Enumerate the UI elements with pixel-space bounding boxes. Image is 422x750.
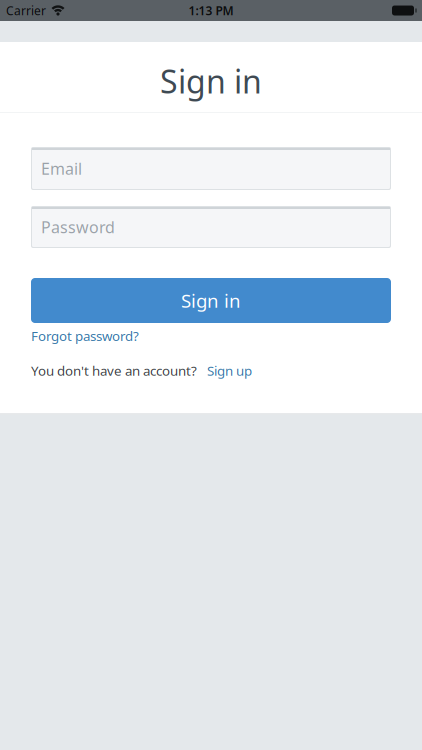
staticText: Sign up [207,362,252,379]
staticText: Password [41,216,115,238]
staticText: 1:13 PM [188,2,233,18]
staticText: Sign in [181,288,241,313]
button[interactable]: Sign up [207,362,252,379]
staticText: Sign in [160,60,262,102]
staticText: Carrier [6,2,46,18]
staticText: Forgot password? [31,327,139,345]
staticText: You don't have an account? [31,362,197,379]
button[interactable]: Forgot password? [31,327,139,345]
button[interactable]: Sign in [31,278,391,323]
staticText: Email [41,158,82,179]
